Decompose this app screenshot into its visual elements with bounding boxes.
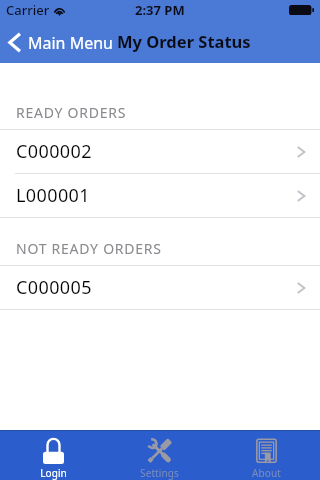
staticText: C000005	[16, 275, 92, 300]
staticText: My Order Status	[117, 30, 251, 52]
staticText: READY ORDERS	[16, 103, 127, 122]
button[interactable]: Login	[0, 431, 106, 480]
button[interactable]: Back to Main Menu	[0, 26, 121, 58]
staticText: Settings	[140, 466, 179, 480]
staticText: L000001	[16, 183, 91, 208]
button[interactable]: About	[213, 431, 320, 480]
button[interactable]: Settings	[106, 431, 213, 480]
other: Battery	[289, 5, 314, 15]
other: Settings	[149, 438, 170, 464]
button[interactable]: C000005	[0, 266, 320, 309]
staticText: Carrier	[6, 1, 50, 19]
other: About	[256, 438, 277, 464]
staticText: About	[252, 466, 281, 480]
staticText: NOT READY ORDERS	[16, 239, 162, 258]
button[interactable]: L000001	[0, 174, 320, 217]
staticText: Main Menu	[28, 32, 113, 54]
button[interactable]: C000002	[0, 130, 320, 173]
other: Login	[43, 438, 64, 464]
other: Wi-Fi	[53, 7, 66, 16]
staticText: C000002	[16, 139, 92, 164]
staticText: Login	[40, 466, 67, 480]
staticText: 2:37 PM	[135, 1, 185, 19]
